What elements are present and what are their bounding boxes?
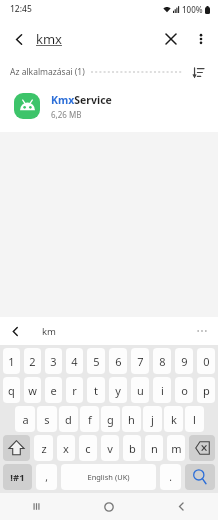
- staticText: kmx: [36, 30, 62, 48]
- button[interactable]: p: [197, 377, 215, 403]
- button[interactable]: 9: [175, 348, 193, 374]
- staticText: a: [22, 412, 29, 427]
- staticText: 3: [50, 354, 57, 369]
- button[interactable]: w: [24, 377, 41, 403]
- button[interactable]: Back: [145, 493, 218, 520]
- button[interactable]: r: [66, 377, 83, 403]
- button[interactable]: i: [153, 377, 171, 403]
- button[interactable]: ,: [36, 464, 57, 490]
- staticText: 9: [181, 354, 188, 369]
- staticText: w: [28, 383, 37, 398]
- staticText: n: [151, 441, 158, 456]
- staticText: c: [85, 441, 91, 456]
- staticText: !#1: [10, 471, 25, 484]
- button[interactable]: !#1: [3, 464, 32, 490]
- button[interactable]: More suggestions: [190, 319, 214, 343]
- button[interactable]: b: [123, 435, 141, 461]
- button[interactable]: o: [175, 377, 193, 403]
- button[interactable]: k: [164, 406, 183, 432]
- button[interactable]: d: [59, 406, 78, 432]
- staticText: z: [41, 441, 47, 456]
- button[interactable]: KmxService: [0, 84, 218, 128]
- staticText: .: [169, 470, 172, 484]
- staticText: t: [94, 383, 98, 398]
- staticText: 8: [159, 354, 166, 369]
- button[interactable]: Home: [72, 493, 145, 520]
- staticText: 4: [71, 354, 78, 369]
- staticText: English (UK): [87, 472, 130, 482]
- staticText: 100%: [182, 4, 203, 15]
- button[interactable]: Previous suggestions: [2, 318, 28, 344]
- staticText: 6,26 MB: [51, 109, 82, 120]
- staticText: v: [107, 441, 113, 456]
- staticText: q: [8, 383, 15, 398]
- button[interactable]: f: [80, 406, 99, 432]
- button[interactable]: Shift: [3, 435, 30, 461]
- button[interactable]: .: [160, 464, 181, 490]
- staticText: k: [171, 412, 177, 427]
- button[interactable]: e: [45, 377, 62, 403]
- button[interactable]: s: [37, 406, 57, 432]
- button[interactable]: l: [185, 406, 204, 432]
- button[interactable]: t: [87, 377, 105, 403]
- button[interactable]: 4: [66, 348, 83, 374]
- staticText: o: [181, 383, 188, 398]
- button[interactable]: Clear: [156, 24, 186, 54]
- button[interactable]: Recents: [0, 493, 72, 520]
- staticText: s: [44, 412, 50, 427]
- staticText: KmxService: [51, 93, 112, 107]
- button[interactable]: v: [101, 435, 119, 461]
- staticText: Az alkalmazásai (1): [10, 66, 85, 78]
- staticText: x: [63, 441, 69, 456]
- button[interactable]: 1: [3, 348, 20, 374]
- button[interactable]: n: [145, 435, 163, 461]
- staticText: j: [151, 412, 154, 427]
- button[interactable]: Back: [4, 24, 34, 54]
- staticText: y: [115, 383, 121, 398]
- button[interactable]: m: [167, 435, 185, 461]
- staticText: 5: [93, 354, 100, 369]
- button[interactable]: More options: [186, 24, 216, 54]
- button[interactable]: 8: [153, 348, 171, 374]
- staticText: l: [193, 412, 196, 427]
- button[interactable]: c: [79, 435, 97, 461]
- staticText: r: [72, 383, 77, 398]
- staticText: g: [107, 412, 114, 427]
- button[interactable]: x: [57, 435, 75, 461]
- staticText: i: [161, 383, 164, 398]
- button[interactable]: y: [109, 377, 127, 403]
- staticText: h: [128, 412, 135, 427]
- button[interactable]: Sort: [188, 62, 208, 82]
- button[interactable]: 0: [197, 348, 215, 374]
- staticText: p: [203, 383, 210, 398]
- staticText: 7: [137, 354, 144, 369]
- button[interactable]: 2: [24, 348, 41, 374]
- button[interactable]: j: [143, 406, 162, 432]
- staticText: ,: [45, 470, 48, 484]
- button[interactable]: 7: [131, 348, 149, 374]
- staticText: 2: [29, 354, 36, 369]
- button[interactable]: a: [15, 406, 35, 432]
- staticText: 1: [8, 354, 15, 369]
- staticText: 0: [203, 354, 210, 369]
- button[interactable]: km: [42, 325, 56, 338]
- staticText: 6: [115, 354, 122, 369]
- button[interactable]: Search: [185, 464, 215, 490]
- button[interactable]: u: [131, 377, 149, 403]
- button[interactable]: 3: [45, 348, 62, 374]
- button[interactable]: Backspace: [189, 435, 215, 461]
- staticText: 12:45: [10, 3, 32, 15]
- staticText: e: [50, 383, 57, 398]
- button[interactable]: 5: [87, 348, 105, 374]
- button[interactable]: h: [122, 406, 141, 432]
- button[interactable]: g: [101, 406, 120, 432]
- button[interactable]: q: [3, 377, 20, 403]
- staticText: f: [88, 412, 92, 427]
- staticText: m: [171, 441, 182, 456]
- button[interactable]: 6: [109, 348, 127, 374]
- staticText: d: [65, 412, 72, 427]
- staticText: u: [137, 383, 144, 398]
- button[interactable]: English (UK): [61, 464, 156, 490]
- button[interactable]: z: [34, 435, 53, 461]
- staticText: km: [42, 325, 56, 338]
